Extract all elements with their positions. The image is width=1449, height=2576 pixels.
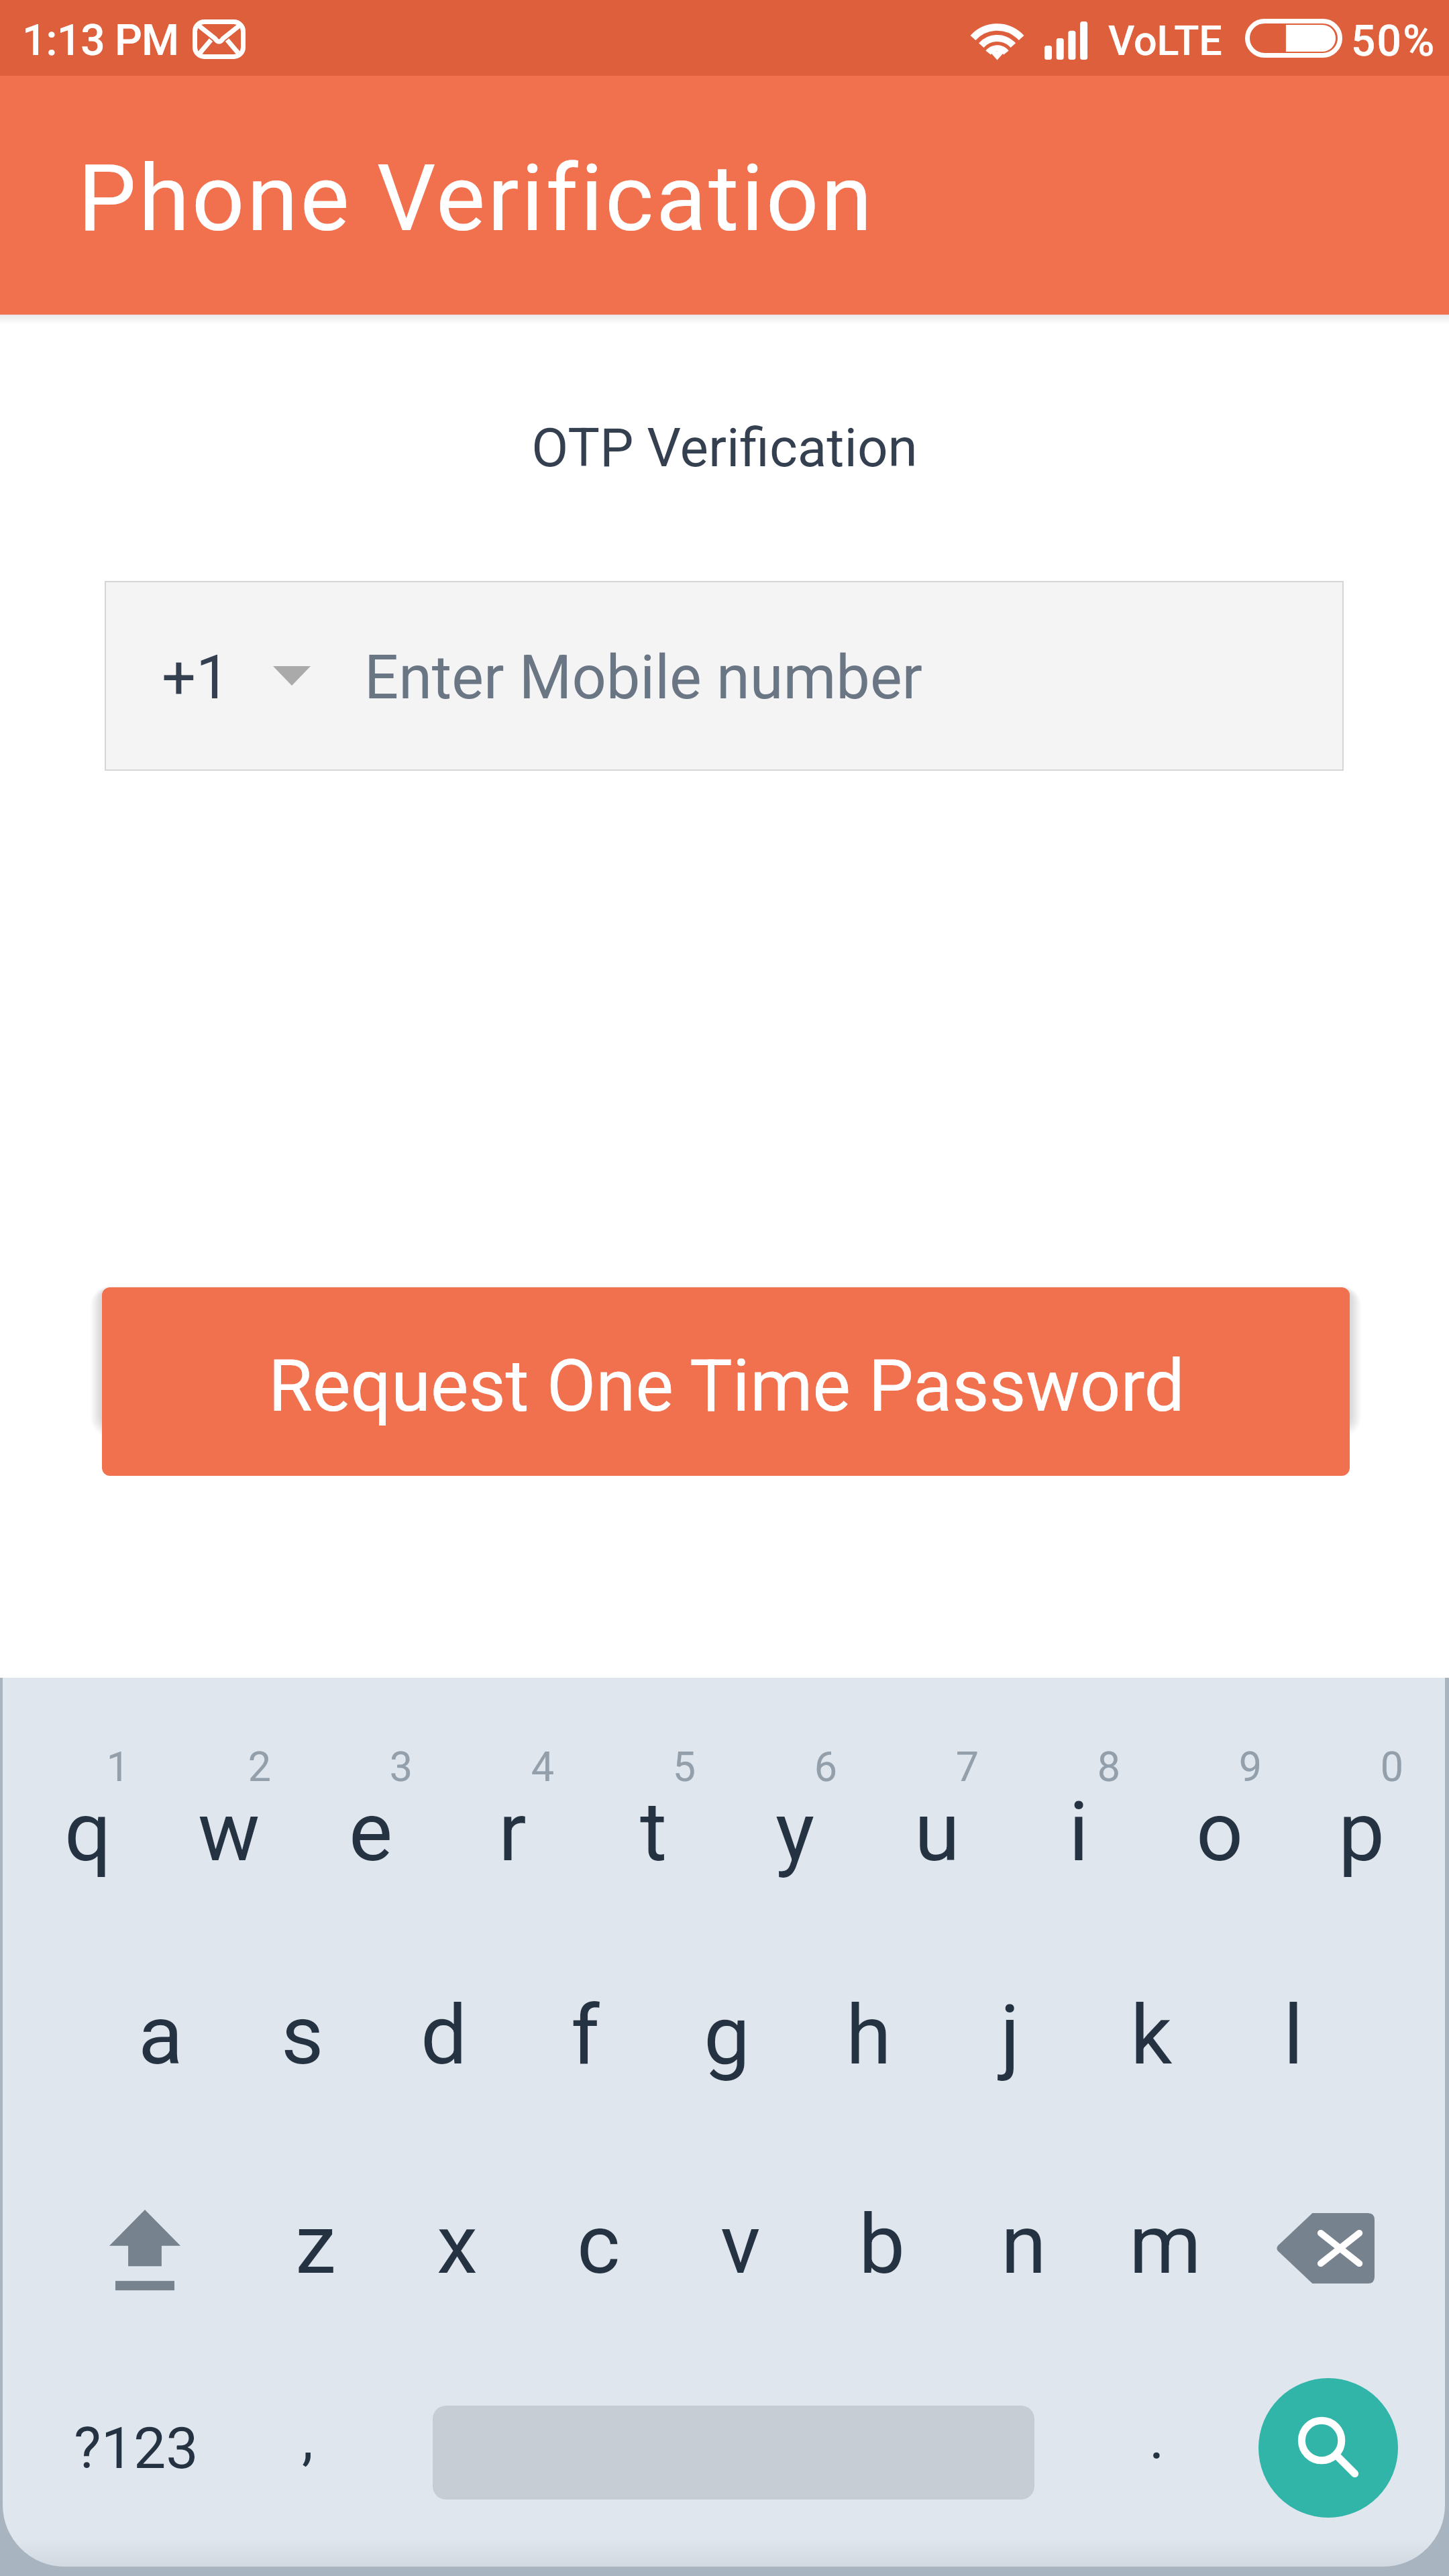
- button[interactable]: e: [300, 1731, 441, 1933]
- staticText: b: [859, 2196, 906, 2293]
- button[interactable]: Enter Mobile number: [334, 582, 1342, 769]
- staticText: g: [704, 1987, 751, 2084]
- staticText: 2: [233, 1743, 286, 1790]
- staticText: n: [1001, 2196, 1046, 2293]
- button[interactable]: j: [939, 1934, 1081, 2137]
- staticText: 50%: [1351, 16, 1436, 66]
- button[interactable]: g: [656, 1934, 798, 2137]
- staticText: x: [437, 2196, 478, 2293]
- staticText: j: [1000, 1987, 1020, 2084]
- staticText: w: [198, 1784, 260, 1880]
- button[interactable]: q: [17, 1731, 158, 1933]
- staticText: Phone Verification: [78, 144, 875, 253]
- button[interactable]: h: [798, 1934, 939, 2137]
- staticText: i: [1069, 1784, 1089, 1880]
- button[interactable]: o: [1149, 1731, 1291, 1933]
- button[interactable]: z: [245, 2143, 386, 2346]
- button[interactable]: i: [1008, 1731, 1149, 1933]
- staticText: l: [1283, 1987, 1303, 2084]
- button[interactable]: w: [158, 1731, 300, 1933]
- staticText: o: [1196, 1784, 1244, 1880]
- staticText: 1: [91, 1743, 145, 1790]
- staticText: a: [138, 1987, 183, 2084]
- button[interactable]: Period: [1096, 2347, 1217, 2548]
- staticText: 8: [1082, 1743, 1136, 1790]
- staticText: r: [498, 1784, 527, 1880]
- staticText: f: [571, 1987, 600, 2084]
- staticText: Request One Time Password: [268, 1344, 1185, 1428]
- staticText: e: [349, 1784, 393, 1880]
- button[interactable]: y: [724, 1731, 866, 1933]
- button[interactable]: d: [373, 1934, 515, 2137]
- button[interactable]: Shift: [74, 2143, 215, 2346]
- staticText: s: [281, 1987, 324, 2084]
- staticText: 6: [799, 1743, 853, 1790]
- staticText: z: [295, 2196, 337, 2293]
- button[interactable]: t: [583, 1731, 724, 1933]
- button[interactable]: n: [953, 2143, 1094, 2346]
- button[interactable]: p: [1291, 1731, 1432, 1933]
- staticText: y: [775, 1784, 815, 1880]
- staticText: u: [914, 1784, 960, 1880]
- staticText: VoLTE: [1108, 17, 1222, 64]
- button[interactable]: Request One Time Password: [102, 1287, 1350, 1476]
- button[interactable]: r: [441, 1731, 583, 1933]
- staticText: ?123: [74, 2414, 199, 2482]
- staticText: 5: [657, 1743, 711, 1790]
- staticText: q: [64, 1784, 111, 1880]
- button[interactable]: m: [1094, 2143, 1236, 2346]
- button[interactable]: ?123: [54, 2347, 219, 2548]
- staticText: 7: [941, 1743, 994, 1790]
- staticText: p: [1338, 1784, 1385, 1880]
- staticText: OTP Verification: [0, 417, 1449, 480]
- staticText: ,: [302, 2405, 313, 2473]
- button[interactable]: Backspace: [1254, 2143, 1396, 2346]
- staticText: v: [720, 2196, 761, 2293]
- button[interactable]: Search: [1258, 2378, 1398, 2518]
- staticText: 1:13 PM: [22, 15, 179, 66]
- staticText: h: [846, 1987, 892, 2084]
- staticText: k: [1130, 1987, 1173, 2084]
- staticText: 4: [516, 1743, 570, 1790]
- button[interactable]: s: [231, 1934, 373, 2137]
- button[interactable]: l: [1222, 1934, 1364, 2137]
- other: Select country code: [273, 666, 311, 686]
- staticText: 0: [1365, 1743, 1419, 1790]
- button[interactable]: +1: [146, 582, 334, 769]
- staticText: Enter Mobile number: [364, 643, 923, 713]
- staticText: d: [421, 1987, 468, 2084]
- button[interactable]: u: [866, 1731, 1008, 1933]
- button[interactable]: f: [515, 1934, 656, 2137]
- staticText: .: [1149, 2405, 1165, 2473]
- staticText: 3: [374, 1743, 428, 1790]
- button[interactable]: c: [528, 2143, 669, 2346]
- button[interactable]: k: [1081, 1934, 1222, 2137]
- button[interactable]: v: [669, 2143, 811, 2346]
- staticText: t: [640, 1784, 667, 1880]
- staticText: +1: [162, 643, 230, 713]
- staticText: m: [1129, 2196, 1201, 2293]
- button[interactable]: a: [90, 1934, 231, 2137]
- button[interactable]: b: [811, 2143, 953, 2346]
- button[interactable]: Comma: [247, 2347, 368, 2548]
- button[interactable]: x: [386, 2143, 528, 2346]
- staticText: c: [577, 2196, 621, 2293]
- staticText: 9: [1224, 1743, 1277, 1790]
